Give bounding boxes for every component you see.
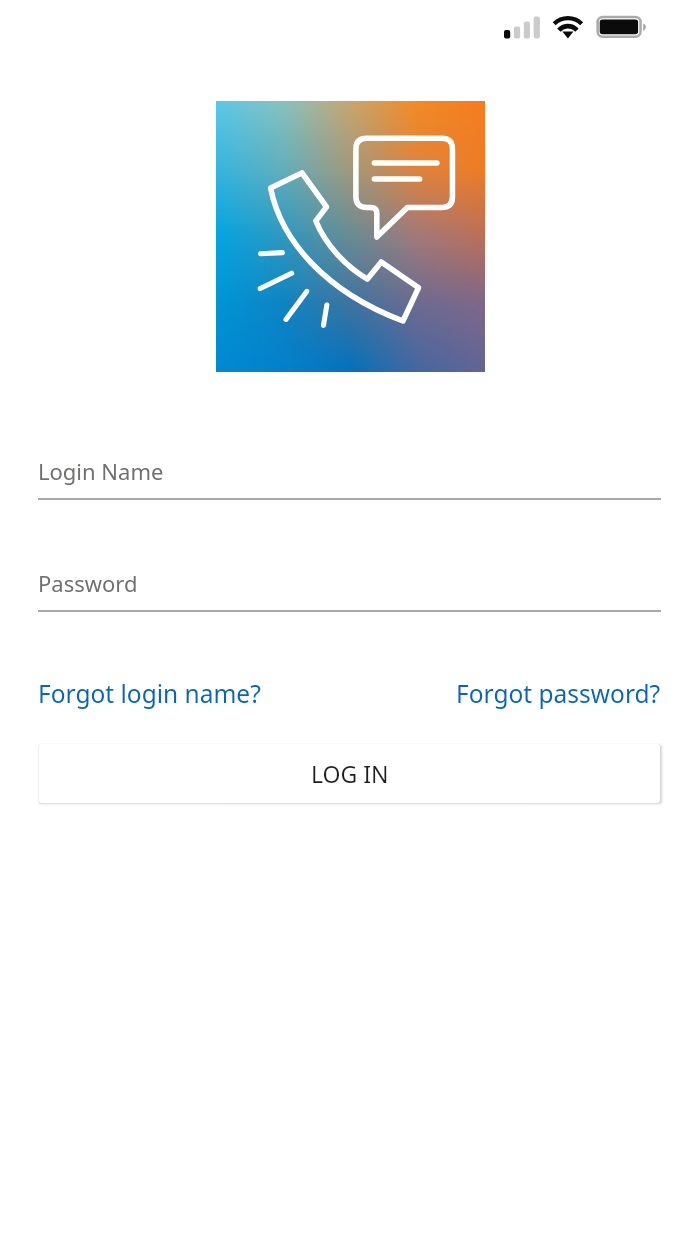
button[interactable]: Forgot password?: [456, 669, 661, 717]
staticText: Forgot password?: [456, 677, 661, 710]
button[interactable]: Password: [38, 568, 661, 612]
button[interactable]: Forgot login name?: [38, 669, 261, 717]
staticText: Login Name: [38, 456, 164, 486]
other: Signal, Wi-Fi and battery status: [0, 0, 700, 56]
staticText: LOG IN: [311, 758, 389, 789]
button[interactable]: Login Name: [38, 456, 661, 500]
other: Phone and message app logo: [216, 101, 485, 372]
staticText: Password: [38, 568, 138, 598]
staticText: Forgot login name?: [38, 677, 261, 710]
button[interactable]: LOG IN: [39, 744, 660, 803]
